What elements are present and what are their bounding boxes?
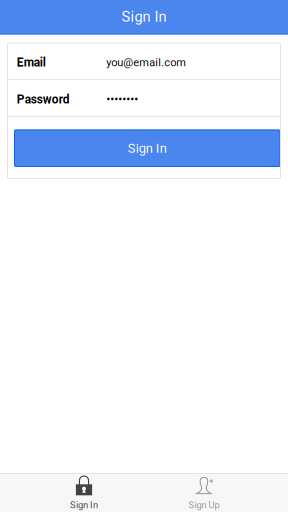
staticText: Sign In [128, 141, 167, 156]
staticText: Password [17, 92, 70, 106]
button[interactable]: Sign In [24, 474, 144, 512]
button[interactable]: Email [7, 43, 280, 79]
staticText: Sign In [70, 500, 98, 510]
staticText: Sign Up [188, 500, 219, 510]
staticText: •••••••• [106, 93, 138, 106]
button[interactable]: Sign In [14, 130, 280, 166]
staticText: Sign In [121, 8, 166, 25]
staticText: you@email.com [106, 56, 186, 69]
button[interactable]: Sign Up [144, 474, 264, 512]
button[interactable]: Password [7, 80, 280, 116]
staticText: Email [17, 55, 46, 69]
